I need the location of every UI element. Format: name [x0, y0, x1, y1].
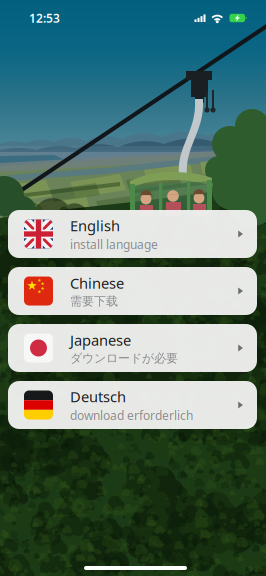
staticText: install language — [70, 236, 158, 252]
staticText: 需要下载 — [70, 294, 118, 309]
staticText: Chinese — [70, 273, 124, 293]
button[interactable]: English — [8, 210, 257, 258]
staticText: 12:53 — [29, 10, 60, 26]
staticText: Japanese — [70, 330, 131, 350]
staticText: download erforderlich — [70, 407, 193, 423]
button[interactable]: Chinese — [8, 267, 257, 315]
staticText: English — [70, 216, 120, 235]
staticText: ダウンロードが必要 — [70, 351, 178, 366]
button[interactable]: Japanese — [8, 324, 257, 372]
button[interactable]: Deutsch — [8, 381, 257, 429]
staticText: Deutsch — [70, 387, 126, 406]
